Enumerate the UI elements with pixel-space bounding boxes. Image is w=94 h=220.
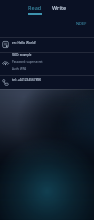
staticText: tel: +441234567890 (12, 78, 42, 82)
staticText: Write (52, 4, 67, 11)
staticText: Password: supersecret (12, 60, 43, 64)
button[interactable]: SSID: example (0, 53, 94, 75)
button[interactable]: Read (27, 0, 43, 15)
button[interactable]: en: Hello World! (0, 38, 94, 52)
staticText: Read (28, 4, 42, 11)
button[interactable]: tel: +441234567890 (0, 76, 94, 89)
button[interactable]: Write (51, 0, 68, 15)
staticText: SSID: example (12, 53, 32, 57)
staticText: Auth: WPA (12, 67, 27, 71)
staticText: NDEF (76, 21, 87, 26)
staticText: en: Hello World! (12, 41, 36, 45)
